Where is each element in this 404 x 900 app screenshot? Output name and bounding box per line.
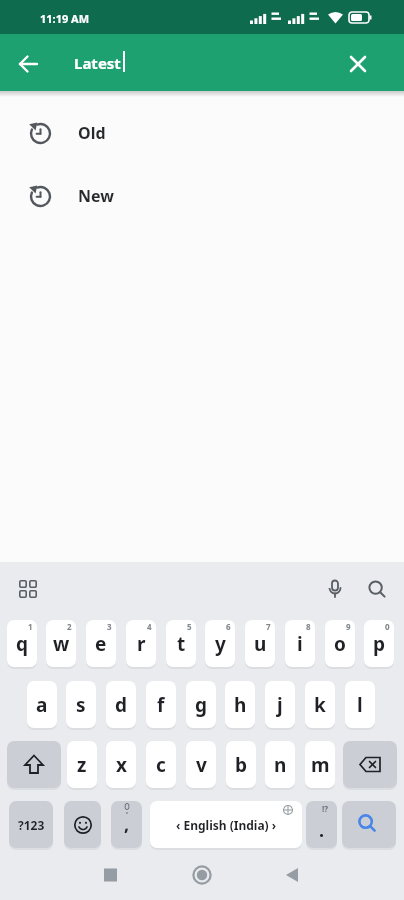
staticText: h [234,692,247,718]
staticText: . [319,818,325,843]
button[interactable]: e [86,620,116,667]
staticText: d [115,692,128,718]
staticText: a [36,692,48,718]
staticText: y [215,631,226,657]
staticText: w [53,631,70,657]
staticText: p [373,631,386,657]
button[interactable] [342,48,374,80]
staticText: b [235,752,248,778]
staticText: k [314,692,326,718]
button[interactable] [342,801,396,848]
button[interactable] [10,572,46,606]
staticText: n [274,752,287,778]
button[interactable]: h [225,681,255,728]
staticText: , [124,812,130,837]
staticText: e [95,631,107,657]
staticText: 4 [147,621,152,632]
staticText: j [277,692,283,718]
staticText: 3 [107,621,112,632]
button[interactable]: g [186,681,216,728]
button[interactable]: n [265,741,295,788]
staticText: l [357,692,363,718]
staticText: 2 [67,621,72,632]
button[interactable] [64,801,101,848]
staticText: c [156,752,166,778]
staticText: 1 [28,621,33,632]
button[interactable]: j [265,681,295,728]
button[interactable]: a [27,681,57,728]
button[interactable]: , [111,801,142,848]
button[interactable]: r [126,620,156,667]
button[interactable]: . [306,801,337,848]
button[interactable]: v [186,741,216,788]
staticText: 5 [187,621,192,632]
button[interactable] [359,572,395,606]
staticText: 11:19 AM [40,11,90,26]
button[interactable]: Old [0,110,404,156]
button[interactable] [12,48,44,80]
button[interactable]: k [305,681,335,728]
button[interactable]: w [46,620,76,667]
button[interactable]: t [166,620,196,667]
staticText: x [116,752,127,778]
button[interactable] [317,572,353,606]
staticText: z [77,752,87,778]
staticText: Old [78,122,106,144]
button[interactable]: c [146,741,176,788]
staticText: v [196,752,207,778]
button[interactable] [343,741,397,788]
button[interactable]: l [345,681,375,728]
staticText: q [16,631,29,657]
staticText: 8 [306,621,311,632]
staticText: 9 [346,621,351,632]
button[interactable]: u [245,620,275,667]
staticText: 7 [266,621,271,632]
button[interactable] [7,741,61,788]
button[interactable]: y [205,620,235,667]
staticText: m [311,752,330,778]
staticText: i [297,631,303,657]
button[interactable]: i [285,620,315,667]
button[interactable]: o [325,620,355,667]
button[interactable]: s [66,681,96,728]
staticText: 0 [385,621,390,632]
staticText: s [76,692,86,718]
staticText: o [334,631,346,657]
staticText: g [195,692,208,718]
staticText: Latest [74,53,121,73]
button[interactable]: m [305,741,335,788]
staticText: u [254,631,267,657]
staticText: r [137,631,146,657]
button[interactable]: d [106,681,136,728]
staticText: t [177,631,186,657]
button[interactable]: ?123 [9,801,53,848]
button[interactable]: z [67,741,97,788]
button[interactable]: New [0,173,404,219]
staticText: ?123 [18,817,45,833]
button[interactable]: f [146,681,176,728]
button[interactable]: q [7,620,37,667]
button[interactable]: ‹ English (India) › [150,801,302,848]
button[interactable]: b [226,741,256,788]
button[interactable]: x [106,741,136,788]
staticText: !? [322,803,329,814]
staticText: f [157,692,165,718]
button[interactable]: p [364,620,394,667]
staticText: ‹ English (India) › [176,817,277,833]
staticText: New [78,185,114,207]
staticText: 6 [226,621,231,632]
